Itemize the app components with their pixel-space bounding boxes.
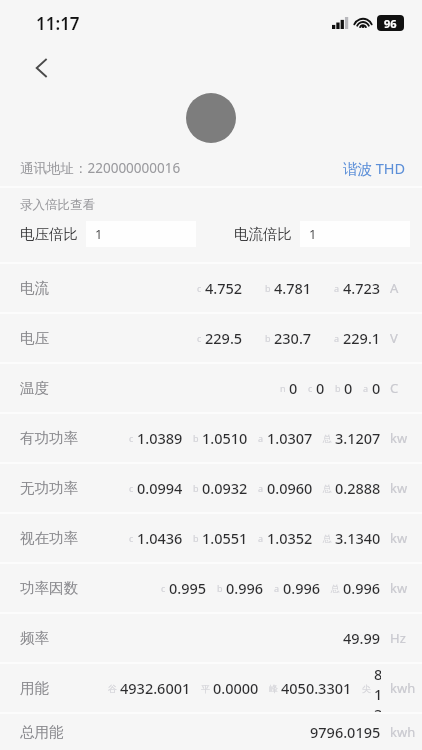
staticText: b <box>335 382 341 394</box>
button[interactable]: 电流 <box>0 264 422 312</box>
staticText: 0.0960 <box>267 478 313 498</box>
staticText: 录入倍比查看 <box>20 197 95 213</box>
staticText: 229.1 <box>343 328 381 348</box>
button[interactable]: 无功功率 <box>0 464 422 512</box>
staticText: a <box>258 532 264 544</box>
staticText: V <box>390 329 422 347</box>
staticText: 温度 <box>20 379 98 397</box>
staticText: Hz <box>390 629 422 647</box>
staticText: b <box>193 432 199 444</box>
button[interactable]: 谐波 THD <box>339 154 410 182</box>
staticText: 1.0510 <box>202 428 248 448</box>
button[interactable]: 有功功率 <box>0 414 422 462</box>
button[interactable]: 1 <box>300 221 410 247</box>
staticText: kw <box>390 529 422 547</box>
button[interactable]: 视在功率 <box>0 514 422 562</box>
staticText: kwh <box>390 723 422 741</box>
staticText: 1 <box>95 225 103 243</box>
staticText: 4.781 <box>274 278 312 298</box>
staticText: 11:17 <box>36 12 80 35</box>
staticText: kw <box>390 479 422 497</box>
staticText: A <box>390 279 422 297</box>
staticText: 通讯地址：220000000016 <box>20 159 181 177</box>
staticText: 0.996 <box>226 578 264 598</box>
staticText: 用能 <box>20 679 98 697</box>
button[interactable] <box>186 93 236 143</box>
staticText: 峰 <box>269 683 278 694</box>
staticText: 230.7 <box>274 328 312 348</box>
staticText: 视在功率 <box>20 529 98 547</box>
staticText: b <box>217 582 223 594</box>
button[interactable]: 总用能 <box>0 714 422 750</box>
staticText: b <box>193 482 199 494</box>
staticText: 0 <box>316 378 325 398</box>
staticText: 电压 <box>20 329 98 347</box>
button[interactable]: 1 <box>86 221 196 247</box>
staticText: kwh <box>390 679 422 697</box>
staticText: 813.0800 <box>374 664 381 712</box>
staticText: 总 <box>323 483 332 494</box>
staticText: 谷 <box>108 683 117 694</box>
staticText: 9796.0195 <box>310 722 381 742</box>
staticText: 0 <box>344 378 353 398</box>
staticText: 0.996 <box>343 578 381 598</box>
staticText: 0.2888 <box>335 478 381 498</box>
staticText: 1.0307 <box>267 428 313 448</box>
staticText: 总 <box>323 433 332 444</box>
staticText: a <box>258 432 264 444</box>
staticText: 尖 <box>362 683 371 694</box>
staticText: 4932.6001 <box>120 678 191 698</box>
staticText: 1 <box>309 225 317 243</box>
staticText: c <box>197 332 202 344</box>
staticText: 频率 <box>20 629 98 647</box>
staticText: 4050.3301 <box>281 678 352 698</box>
staticText: b <box>193 532 199 544</box>
button[interactable]: 频率 <box>0 614 422 662</box>
staticText: 0.995 <box>169 578 207 598</box>
staticText: a <box>334 332 340 344</box>
staticText: c <box>197 282 202 294</box>
staticText: c <box>308 382 313 394</box>
staticText: n <box>280 382 286 394</box>
button[interactable]: 功率因数 <box>0 564 422 612</box>
staticText: 0.0000 <box>213 678 259 698</box>
staticText: 0 <box>289 378 298 398</box>
staticText: 1.0389 <box>137 428 183 448</box>
staticText: 1.0352 <box>267 528 313 548</box>
button[interactable]: 用能 <box>0 664 422 712</box>
staticText: a <box>363 382 369 394</box>
staticText: c <box>129 532 134 544</box>
staticText: 总用能 <box>20 723 98 741</box>
staticText: b <box>265 282 271 294</box>
staticText: 49.99 <box>343 628 381 648</box>
staticText: 无功功率 <box>20 479 98 497</box>
staticText: b <box>265 332 271 344</box>
button[interactable]: 电压 <box>0 314 422 362</box>
staticText: 0 <box>372 378 381 398</box>
staticText: 1.0436 <box>137 528 183 548</box>
staticText: a <box>334 282 340 294</box>
staticText: 96 <box>384 16 397 31</box>
staticText: 总 <box>323 533 332 544</box>
button[interactable]: Back <box>20 46 64 90</box>
staticText: 电流 <box>20 279 98 297</box>
staticText: 0.0994 <box>137 478 183 498</box>
staticText: kw <box>390 579 422 597</box>
staticText: 1.0551 <box>202 528 248 548</box>
staticText: 3.1207 <box>335 428 381 448</box>
staticText: 功率因数 <box>20 579 98 597</box>
staticText: c <box>161 582 166 594</box>
staticText: 有功功率 <box>20 429 98 447</box>
staticText: c <box>129 482 134 494</box>
staticText: 0.0932 <box>202 478 248 498</box>
staticText: c <box>129 432 134 444</box>
staticText: 4.723 <box>343 278 381 298</box>
staticText: 总 <box>331 583 340 594</box>
staticText: 3.1340 <box>335 528 381 548</box>
staticText: 平 <box>201 683 210 694</box>
staticText: a <box>258 482 264 494</box>
staticText: 电流倍比 <box>234 225 292 243</box>
staticText: 229.5 <box>205 328 243 348</box>
button[interactable]: 温度 <box>0 364 422 412</box>
staticText: 4.752 <box>205 278 243 298</box>
